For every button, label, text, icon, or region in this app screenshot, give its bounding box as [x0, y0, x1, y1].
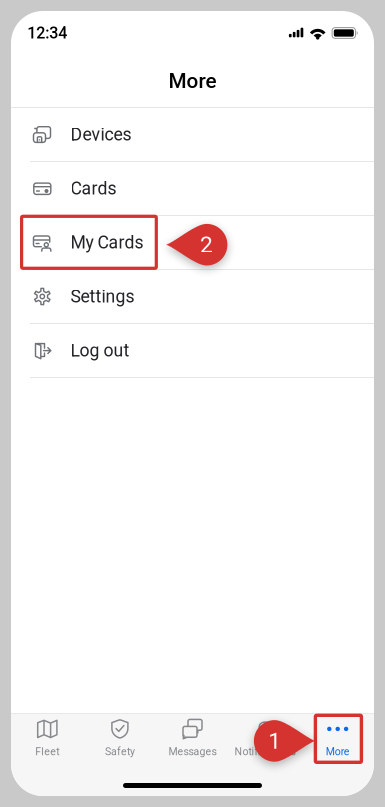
- staticText: More: [326, 745, 350, 758]
- staticText: More: [168, 69, 216, 93]
- staticText: Log out: [70, 340, 129, 361]
- button[interactable]: Devices: [11, 108, 374, 162]
- staticText: 1: [268, 728, 281, 754]
- button[interactable]: Settings: [11, 270, 374, 324]
- button[interactable]: Messages: [156, 715, 229, 761]
- button[interactable]: Cards: [11, 162, 374, 216]
- staticText: My Cards: [70, 232, 143, 253]
- staticText: Messages: [168, 745, 216, 758]
- staticText: Safety: [105, 745, 135, 758]
- staticText: Cards: [70, 178, 116, 199]
- staticText: Settings: [70, 286, 134, 307]
- button[interactable]: Notifications: [229, 715, 301, 761]
- button[interactable]: My Cards: [11, 216, 374, 270]
- button[interactable]: Log out: [11, 324, 374, 378]
- staticText: Fleet: [35, 745, 59, 758]
- button[interactable]: Safety: [84, 715, 156, 761]
- button[interactable]: More: [301, 715, 374, 761]
- staticText: 2: [200, 231, 213, 258]
- button[interactable]: Fleet: [11, 715, 84, 761]
- staticText: Devices: [70, 124, 131, 145]
- staticText: 12:34: [27, 24, 67, 42]
- staticText: Notifications: [235, 745, 296, 758]
